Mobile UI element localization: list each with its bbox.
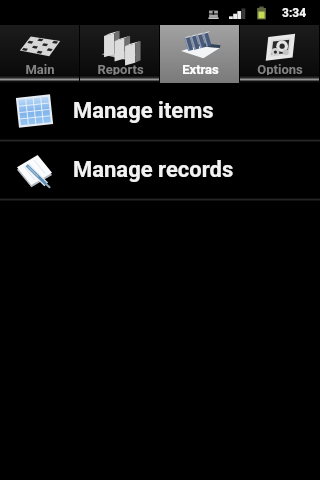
button[interactable]: Extras bbox=[160, 25, 240, 83]
other: Reports bbox=[99, 30, 141, 62]
button[interactable]: Manage records bbox=[0, 142, 320, 198]
button[interactable]: Options bbox=[240, 25, 320, 83]
staticText: 3:34 bbox=[282, 6, 307, 20]
other: Options bbox=[259, 30, 301, 62]
other: Extras bbox=[179, 30, 221, 62]
staticText: Options bbox=[257, 62, 303, 77]
button[interactable]: Reports bbox=[80, 25, 160, 83]
staticText: Main bbox=[25, 62, 55, 77]
staticText: Extras bbox=[182, 62, 219, 77]
other: Main bbox=[19, 30, 61, 62]
button[interactable]: Main bbox=[0, 25, 80, 83]
staticText: Reports bbox=[97, 62, 144, 77]
staticText: Manage items bbox=[73, 98, 214, 124]
staticText: Manage records bbox=[73, 157, 234, 183]
button[interactable]: Manage items bbox=[0, 83, 320, 139]
